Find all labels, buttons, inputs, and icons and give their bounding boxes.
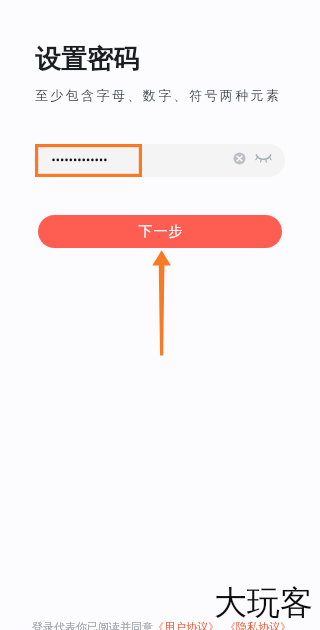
button[interactable] bbox=[34, 144, 285, 177]
button[interactable]: 下一步 bbox=[38, 215, 282, 248]
button[interactable]: Show password bbox=[254, 148, 273, 167]
staticText: 设置密码 bbox=[35, 43, 139, 76]
staticText: 登录代表你已阅读并同意 bbox=[32, 620, 153, 630]
button[interactable]: 《隐私协议》 bbox=[225, 620, 291, 630]
button[interactable]: 《用户协议》 bbox=[153, 620, 219, 630]
button[interactable]: Clear bbox=[230, 149, 249, 168]
staticText: 下一步 bbox=[138, 223, 183, 241]
staticText: 大玩客 bbox=[214, 582, 313, 624]
staticText: 至少包含字母、数字、符号两种元素 bbox=[35, 87, 282, 103]
